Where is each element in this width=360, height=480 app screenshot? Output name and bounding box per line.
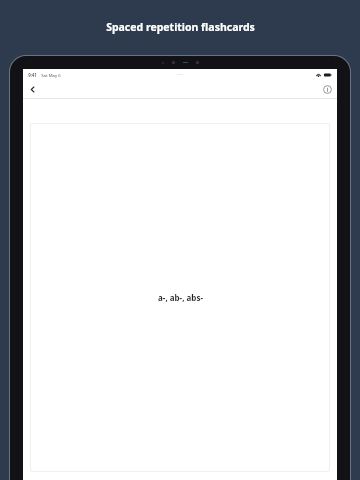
staticText: 9:41: [28, 72, 37, 78]
staticText: Spaced repetition flashcards: [106, 20, 255, 34]
staticText: • • •: [177, 72, 183, 77]
button[interactable]: a-, ab-, abs-: [30, 123, 330, 472]
staticText: a-, ab-, abs-: [158, 292, 203, 303]
staticText: Sat May 6: [41, 72, 61, 78]
button[interactable]: Info: [320, 82, 335, 97]
button[interactable]: Back: [25, 82, 40, 97]
